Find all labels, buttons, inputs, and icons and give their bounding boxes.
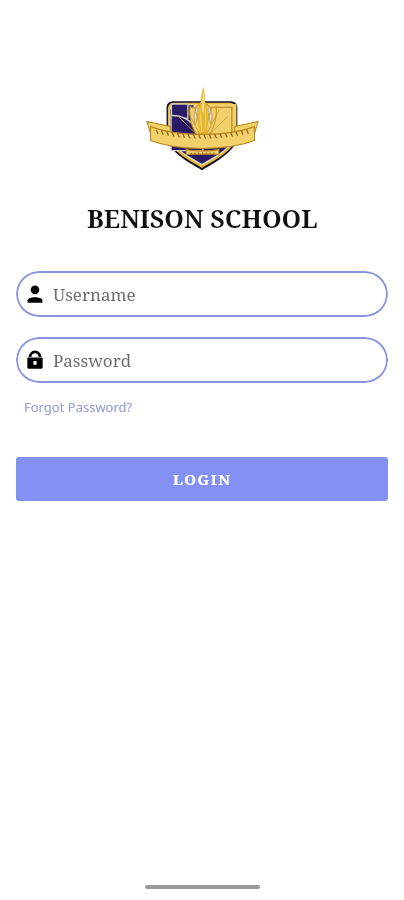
- staticText: LOGIN: [173, 469, 232, 489]
- staticText: BENISON SCHOOL: [87, 201, 318, 235]
- button[interactable]: Username: [16, 271, 388, 317]
- button[interactable]: Forgot Password?: [24, 398, 133, 416]
- staticText: Password: [53, 349, 132, 372]
- button[interactable]: LOGIN: [16, 457, 388, 501]
- button[interactable]: Password: [16, 337, 388, 383]
- staticText: Username: [53, 283, 136, 306]
- staticText: Forgot Password?: [24, 398, 133, 416]
